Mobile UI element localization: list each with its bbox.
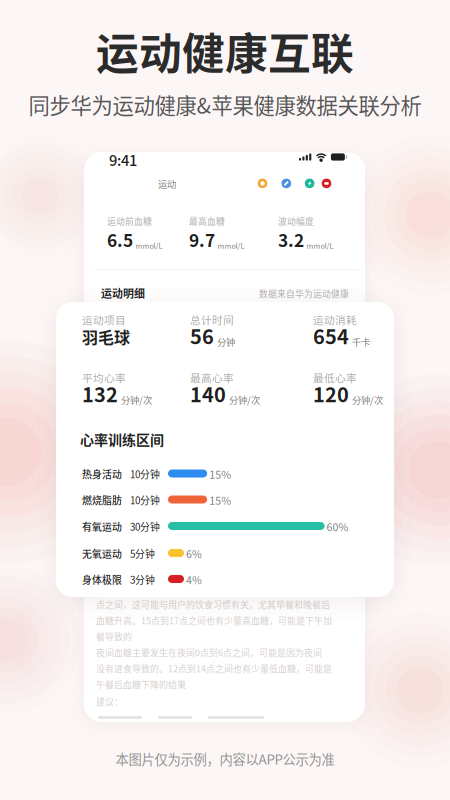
staticText: 同步华为运动健康&苹果健康数据关联分析 [28,89,421,120]
staticText: 9:41 [109,149,137,170]
staticText: 最高血糖 [189,214,225,227]
staticText: 最高心率 [190,370,234,385]
staticText: mmol/L [306,240,333,251]
staticText: 分钟 [217,335,235,348]
staticText: mmol/L [135,240,162,251]
staticText: 燃烧脂肪 [82,493,122,507]
staticText: 6% [186,546,202,561]
staticText: 5分钟 [130,546,155,561]
staticText: 30分钟 [130,519,160,534]
staticText: 热身活动 [82,467,122,481]
staticText: 千卡 [352,335,370,348]
staticText: 午餐后血糖下降的结果 [96,678,186,691]
staticText: 平均心率 [82,370,126,385]
staticText: 3分钟 [130,572,155,587]
staticText: 3.2 [278,227,304,252]
staticText: 分钟/次 [229,393,260,406]
staticText: 10分钟 [130,467,160,481]
staticText: 10分钟 [130,493,160,507]
staticText: 本图片仅为示例，内容以APP公示为准 [115,749,334,768]
staticText: 运动 [158,177,176,190]
staticText: 15% [209,466,231,482]
staticText: 运动健康互联 [96,20,354,82]
staticText: 120 [313,379,349,408]
staticText: 132 [82,379,118,408]
staticText: 没有进食导致的。12点到14点之间也有少量低血糖，可能是 [96,662,332,675]
staticText: 分钟/次 [352,393,383,406]
button[interactable]: 用药 [322,179,331,188]
staticText: 羽毛球 [82,325,130,348]
staticText: 56 [190,321,214,350]
button[interactable]: 记录 [281,179,291,188]
staticText: 60% [327,519,349,534]
staticText: 运动项目 [82,312,126,327]
staticText: 6.5 [107,227,133,252]
staticText: 有氧运动 [82,519,122,534]
button[interactable]: 血糖记录 [258,179,267,188]
staticText: 分钟/次 [121,393,152,406]
staticText: 身体极限 [82,572,122,587]
staticText: 数据来自华为运动健康 [259,287,349,300]
staticText: 夜间血糖主要发生在夜间0点到6点之间，可能是因为夜间 [96,646,322,659]
staticText: 运动前血糖 [107,214,152,227]
staticText: 点之间，这可能与用户的饮食习惯有关，尤其早餐和晚餐后 [96,598,330,611]
staticText: 最低心率 [313,370,357,385]
staticText: 运动消耗 [313,312,357,327]
staticText: 血糖升高。15点到17点之间也有少量高血糖，可能是下午加 [96,614,332,627]
staticText: 波动幅度 [278,214,314,227]
staticText: 无氧运动 [82,546,122,561]
staticText: 9.7 [189,227,215,252]
staticText: 建议： [96,695,123,708]
staticText: 140 [190,379,226,408]
button[interactable]: 运动 [305,179,314,188]
staticText: mmol/L [217,240,244,251]
staticText: 654 [313,321,349,350]
staticText: 15% [209,492,231,508]
staticText: 4% [186,572,202,587]
staticText: 餐导致的 [96,630,132,643]
staticText: 运动明细 [101,285,145,301]
staticText: 心率训练区间 [80,429,164,449]
staticText: 总计时间 [190,312,234,327]
